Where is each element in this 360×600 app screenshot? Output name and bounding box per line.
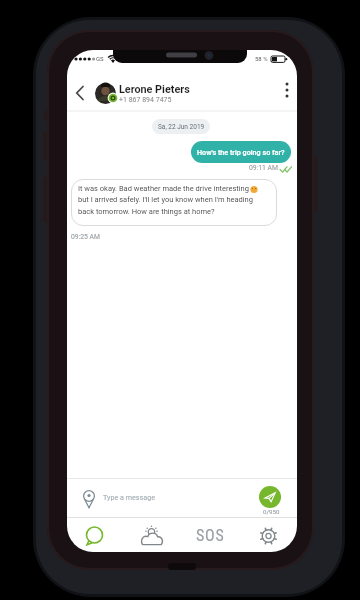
staticText: GS xyxy=(96,55,104,62)
staticText: It was okay. Bad weather made the drive … xyxy=(78,184,253,216)
button[interactable] xyxy=(67,518,124,552)
button[interactable] xyxy=(259,486,281,508)
staticText: Type a message xyxy=(103,493,156,501)
staticText: How's the trip going so far? xyxy=(197,148,285,156)
button[interactable] xyxy=(71,76,93,110)
staticText: Sa, 22 Jun 2019 xyxy=(158,123,205,131)
staticText: 58 % xyxy=(255,55,268,62)
staticText: 09:25 AM xyxy=(71,233,100,241)
staticText: +1 867 894 7475 xyxy=(119,96,172,104)
staticText: 0/950 xyxy=(263,508,280,515)
button[interactable] xyxy=(277,78,297,102)
staticText: Lerone Pieters xyxy=(119,83,190,96)
staticText: 09:11 AM xyxy=(249,164,278,172)
staticText: SOS xyxy=(196,526,225,545)
button[interactable] xyxy=(67,479,247,517)
button[interactable]: SOS xyxy=(181,518,239,552)
button[interactable] xyxy=(124,518,181,552)
button[interactable] xyxy=(239,518,297,552)
